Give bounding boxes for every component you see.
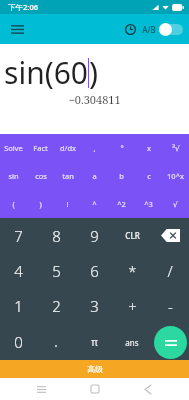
button[interactable]: 0	[0, 324, 37, 360]
button[interactable]: cos	[27, 162, 54, 190]
button[interactable]: 1	[0, 288, 37, 324]
button[interactable]: Recents	[28, 378, 54, 400]
button[interactable]: ^2	[108, 190, 135, 218]
staticText: )	[39, 199, 42, 209]
button[interactable]: 7	[0, 218, 37, 253]
staticText: /	[167, 261, 173, 281]
button[interactable]: 高级	[0, 360, 189, 378]
staticText: !	[66, 199, 69, 209]
button[interactable]: √	[162, 190, 189, 218]
button[interactable]: sin	[0, 162, 27, 190]
staticText: 6	[90, 261, 99, 281]
button[interactable]: .	[37, 324, 75, 360]
button[interactable]: CLR	[113, 218, 151, 253]
staticText: x	[147, 143, 151, 153]
button[interactable]: ^	[81, 190, 108, 218]
staticText: b	[119, 171, 124, 181]
staticText: tan	[62, 171, 74, 181]
staticText: ^3	[144, 199, 153, 209]
button[interactable]: Back	[135, 378, 161, 400]
staticText: 4	[14, 261, 23, 281]
staticText: cos	[35, 171, 47, 181]
staticText: ³√	[172, 143, 180, 153]
staticText: 0	[14, 332, 23, 352]
staticText: °	[120, 143, 124, 153]
staticText: 9	[90, 226, 99, 246]
button[interactable]: 9	[75, 218, 113, 253]
button[interactable]: History	[120, 19, 140, 39]
staticText: CLR	[125, 230, 140, 241]
staticText: 下午2:06	[8, 2, 38, 12]
staticText: d/dx	[60, 143, 76, 153]
staticText: -	[168, 296, 173, 316]
button[interactable]: Equals	[151, 324, 189, 360]
button[interactable]: b	[108, 162, 135, 190]
button[interactable]: Home	[82, 378, 108, 400]
button[interactable]: (	[0, 190, 27, 218]
staticText: ^	[92, 199, 97, 209]
button[interactable]: )	[27, 190, 54, 218]
staticText: *	[128, 261, 137, 281]
button[interactable]: 2	[37, 288, 75, 324]
staticText: −0.304811	[68, 92, 121, 107]
button[interactable]: 8	[37, 218, 75, 253]
button[interactable]: Toggle A B mode	[159, 23, 183, 36]
button[interactable]: 3	[75, 288, 113, 324]
button[interactable]: Fact	[27, 134, 54, 162]
staticText: )	[89, 52, 98, 93]
button[interactable]: /	[151, 253, 189, 288]
button[interactable]: ³√	[162, 134, 189, 162]
button[interactable]: ,	[81, 134, 108, 162]
button[interactable]: π	[75, 324, 113, 360]
button[interactable]: 10^x	[162, 162, 189, 190]
button[interactable]: Backspace	[151, 218, 189, 253]
staticText: ans	[125, 337, 139, 348]
staticText: ,	[93, 143, 96, 153]
staticText: 8	[52, 226, 61, 246]
button[interactable]: Menu	[6, 18, 28, 40]
button[interactable]: !	[54, 190, 81, 218]
button[interactable]: 5	[37, 253, 75, 288]
staticText: √	[173, 200, 178, 209]
button[interactable]: a	[81, 162, 108, 190]
staticText: Solve	[4, 143, 23, 153]
button[interactable]: ans	[113, 324, 151, 360]
staticText: 10^x	[167, 171, 184, 181]
staticText: Fact	[33, 143, 48, 153]
staticText: 7	[14, 226, 23, 246]
staticText: +	[128, 296, 137, 316]
staticText: 5	[52, 261, 61, 281]
button[interactable]: x	[135, 134, 162, 162]
button[interactable]: ^3	[135, 190, 162, 218]
staticText: sin(60	[4, 52, 88, 93]
button[interactable]: 4	[0, 253, 37, 288]
button[interactable]: -	[151, 288, 189, 324]
staticText: π	[91, 335, 98, 349]
staticText: 2	[52, 296, 61, 316]
button[interactable]: tan	[54, 162, 81, 190]
button[interactable]: °	[108, 134, 135, 162]
staticText: 高级	[87, 364, 103, 374]
button[interactable]: +	[113, 288, 151, 324]
button[interactable]: Solve	[0, 134, 27, 162]
staticText: (	[12, 199, 15, 209]
staticText: A/B	[142, 24, 156, 35]
staticText: 3	[90, 296, 99, 316]
button[interactable]: c	[135, 162, 162, 190]
button[interactable]: 6	[75, 253, 113, 288]
button[interactable]: d/dx	[54, 134, 81, 162]
staticText: sin	[8, 171, 19, 181]
staticText: ^2	[117, 199, 126, 209]
staticText: c	[147, 171, 151, 181]
staticText: a	[92, 171, 97, 181]
staticText: .	[54, 333, 58, 351]
button[interactable]: *	[113, 253, 151, 288]
staticText: 1	[14, 296, 23, 316]
